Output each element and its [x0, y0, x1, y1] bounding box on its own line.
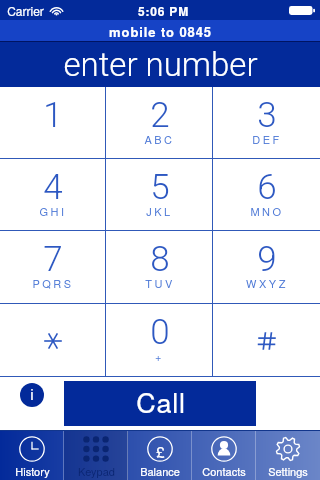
staticText: 0 [150, 312, 170, 353]
button[interactable]: 4 [0, 159, 106, 231]
button[interactable] [0, 304, 106, 377]
staticText: History [15, 463, 50, 479]
staticText: Contacts [202, 463, 246, 479]
staticText: 7 [43, 239, 63, 280]
button[interactable]: enter number [0, 42, 320, 87]
button[interactable]: 5 [106, 159, 213, 231]
staticText: 3 [257, 95, 277, 136]
button[interactable]: £ [128, 430, 192, 480]
staticText: £ [156, 441, 165, 462]
staticText: JKL [146, 203, 173, 219]
staticText: 9 [257, 239, 277, 280]
staticText: 6 [257, 167, 277, 208]
staticText: DEF [252, 131, 282, 147]
button[interactable]: 3 [213, 87, 320, 159]
button[interactable]: Call [64, 381, 256, 426]
button[interactable]: 1 [0, 87, 106, 159]
button[interactable]: Settings [256, 430, 320, 480]
staticText: ABC [144, 131, 175, 147]
staticText: Keypad [78, 463, 115, 479]
staticText: Call [136, 382, 186, 421]
button[interactable]: 8 [106, 231, 213, 304]
staticText: GHI [39, 203, 67, 219]
staticText: 1 [43, 95, 63, 136]
button[interactable]: Contacts [192, 430, 256, 480]
staticText: WXYZ [246, 275, 288, 291]
staticText: 4 [43, 167, 63, 208]
staticText: Settings [268, 463, 308, 479]
staticText: + [155, 348, 164, 364]
staticText: i [30, 387, 34, 403]
button[interactable]: 9 [213, 231, 320, 304]
staticText: enter number [63, 45, 258, 84]
staticText: Balance [140, 463, 180, 479]
staticText: 5 [150, 167, 170, 208]
staticText: Carrier [7, 2, 44, 19]
button[interactable]: Info [20, 383, 44, 407]
staticText: 2 [150, 95, 170, 136]
button[interactable]: 2 [106, 87, 213, 159]
button[interactable]: 7 [0, 231, 106, 304]
button[interactable]: 6 [213, 159, 320, 231]
button[interactable]: History [0, 430, 64, 480]
staticText: MNO [250, 203, 284, 219]
staticText: PQRS [32, 275, 74, 291]
staticText: 5:06 PM [138, 2, 189, 19]
button[interactable]: 0 [106, 304, 213, 377]
button[interactable]: Keypad [64, 430, 128, 480]
staticText: mobile to 0845 [109, 22, 212, 41]
button[interactable] [213, 304, 320, 377]
staticText: TUV [145, 275, 175, 291]
staticText: 8 [150, 239, 170, 280]
